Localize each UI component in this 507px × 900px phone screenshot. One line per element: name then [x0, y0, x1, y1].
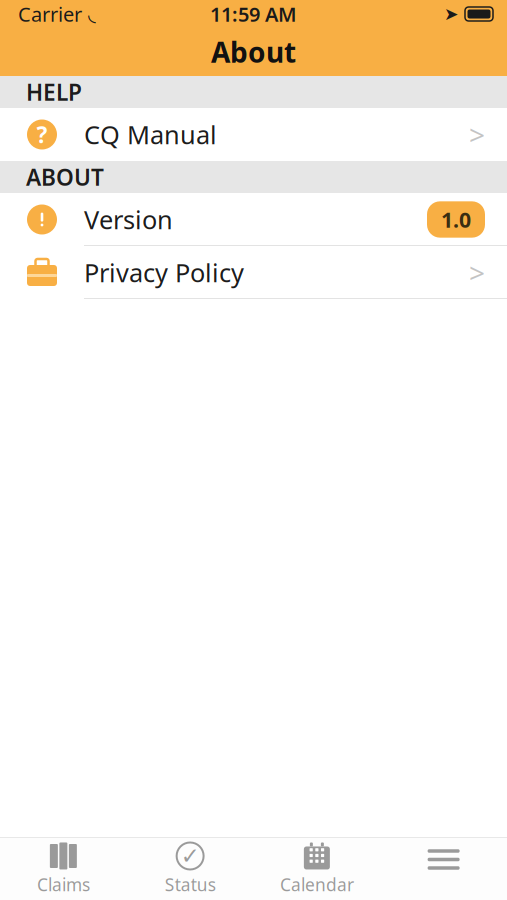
- button[interactable]: Privacy Policy: [0, 246, 507, 299]
- staticText: ABOUT: [26, 162, 104, 192]
- staticText: ✓: [181, 843, 200, 869]
- button[interactable]: Calendar: [253, 838, 380, 900]
- staticText: Status: [165, 873, 216, 896]
- staticText: >: [469, 116, 485, 153]
- staticText: HELP: [26, 77, 82, 107]
- button[interactable]: ✓: [127, 838, 254, 900]
- staticText: 1.0: [441, 205, 471, 234]
- staticText: >: [469, 254, 485, 291]
- staticText: ◟: [88, 3, 96, 25]
- staticText: 11:59 AM: [210, 1, 297, 27]
- staticText: Carrier: [18, 1, 82, 27]
- staticText: Calendar: [280, 873, 354, 896]
- button[interactable]: ?: [0, 108, 507, 161]
- staticText: CQ Manual: [84, 118, 217, 151]
- staticText: Claims: [37, 873, 90, 896]
- button[interactable]: Version: [0, 193, 507, 246]
- staticText: Version: [84, 203, 173, 236]
- button[interactable]: Menu: [380, 838, 507, 900]
- staticText: ?: [36, 119, 47, 149]
- staticText: About: [211, 33, 296, 71]
- staticText: Privacy Policy: [84, 256, 244, 289]
- button[interactable]: Claims: [0, 838, 127, 900]
- staticText: ➤: [444, 4, 459, 24]
